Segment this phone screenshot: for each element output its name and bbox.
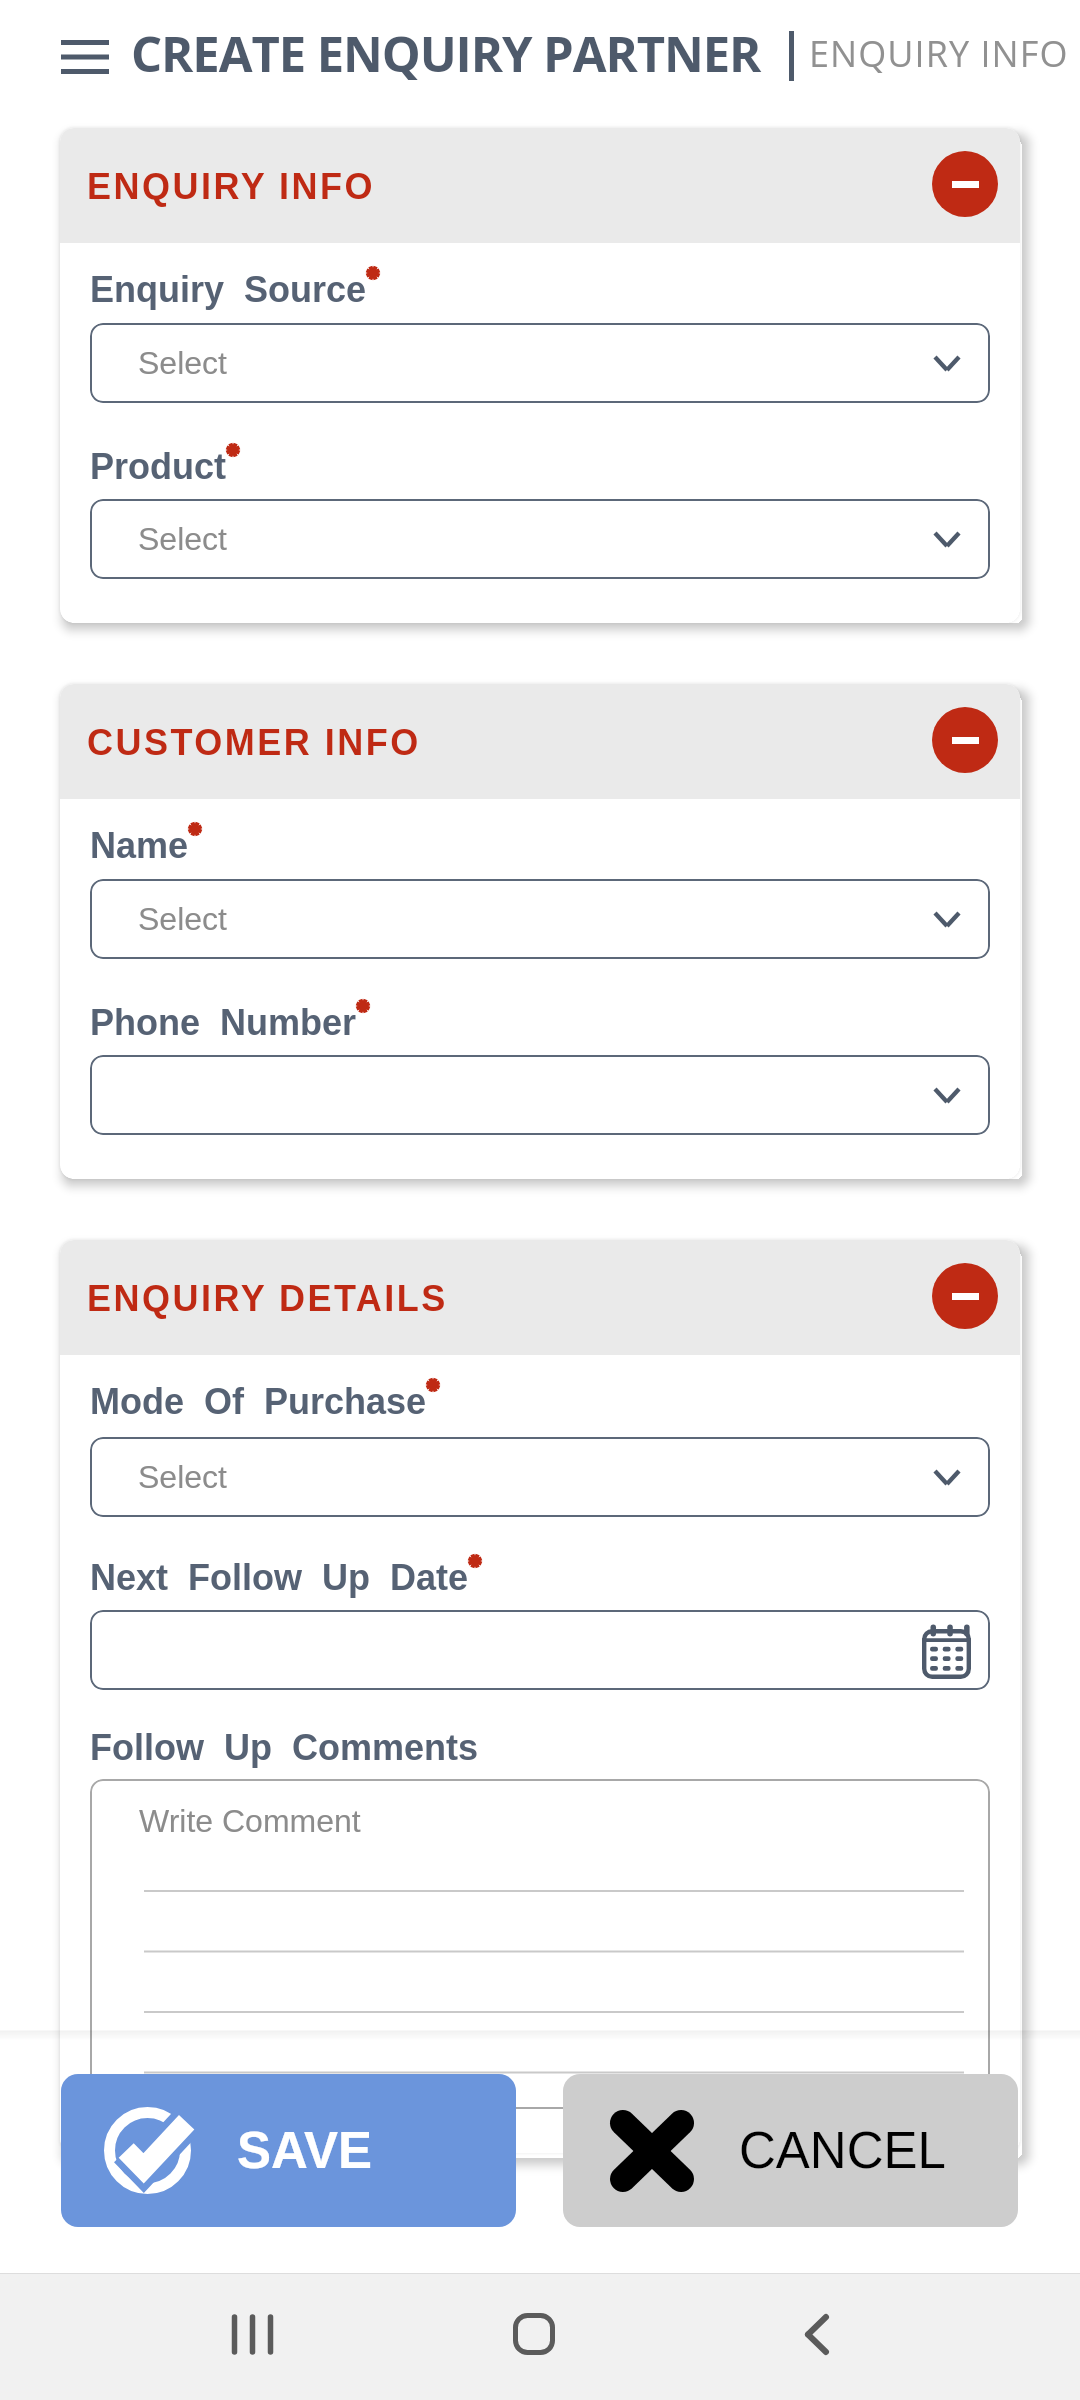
other: Pick date (922, 1622, 974, 1678)
button[interactable]: Select (90, 879, 990, 959)
button[interactable]: Select (90, 499, 990, 579)
button[interactable]: Pick date (90, 1610, 990, 1690)
button[interactable]: Back (751, 2271, 882, 2397)
staticText: SAVE (237, 2122, 373, 2179)
button[interactable]: CUSTOMER INFO (60, 684, 1020, 799)
staticText: ENQUIRY INFO (809, 29, 1069, 78)
staticText: Name (90, 825, 189, 865)
button[interactable]: ENQUIRY DETAILS (60, 1240, 1020, 1355)
staticText: CANCEL (739, 2122, 946, 2179)
staticText: Next Follow Up Date (90, 1557, 469, 1597)
button[interactable]: Menu (50, 25, 120, 93)
button[interactable]: Select (90, 1437, 990, 1517)
button[interactable]: SAVE (61, 2074, 516, 2227)
other: Open dropdown (935, 1471, 959, 1484)
button[interactable]: Home (468, 2271, 599, 2397)
button[interactable]: Recent apps (187, 2271, 318, 2397)
staticText: CREATE ENQUIRY PARTNER (131, 20, 761, 87)
staticText: Enquiry Source (90, 269, 367, 309)
staticText: Mode Of Purchase (90, 1381, 427, 1421)
staticText: Write Comment (139, 1803, 361, 1839)
button[interactable]: ENQUIRY INFO (60, 128, 1020, 243)
staticText: Product (90, 446, 227, 486)
other: Open dropdown (935, 1089, 959, 1102)
staticText: CUSTOMER INFO (87, 722, 421, 762)
button[interactable]: Collapse section (932, 151, 998, 217)
other: Open dropdown (935, 357, 959, 370)
other: Open dropdown (935, 533, 959, 546)
other: Open dropdown (935, 913, 959, 926)
staticText: Phone Number (90, 1002, 357, 1042)
staticText: Select (138, 345, 227, 381)
button[interactable]: Open dropdown (90, 1055, 990, 1135)
button[interactable]: Write Comment (90, 1779, 990, 2109)
staticText: ENQUIRY INFO (87, 166, 376, 206)
staticText: Select (138, 521, 227, 557)
button[interactable]: Select (90, 323, 990, 403)
button[interactable]: CANCEL (563, 2074, 1018, 2227)
staticText: Select (138, 901, 227, 937)
staticText: ENQUIRY DETAILS (87, 1278, 448, 1318)
button[interactable]: Collapse section (932, 1263, 998, 1329)
staticText: Follow Up Comments (90, 1727, 479, 1767)
button[interactable]: Collapse section (932, 707, 998, 773)
staticText: Select (138, 1459, 227, 1495)
